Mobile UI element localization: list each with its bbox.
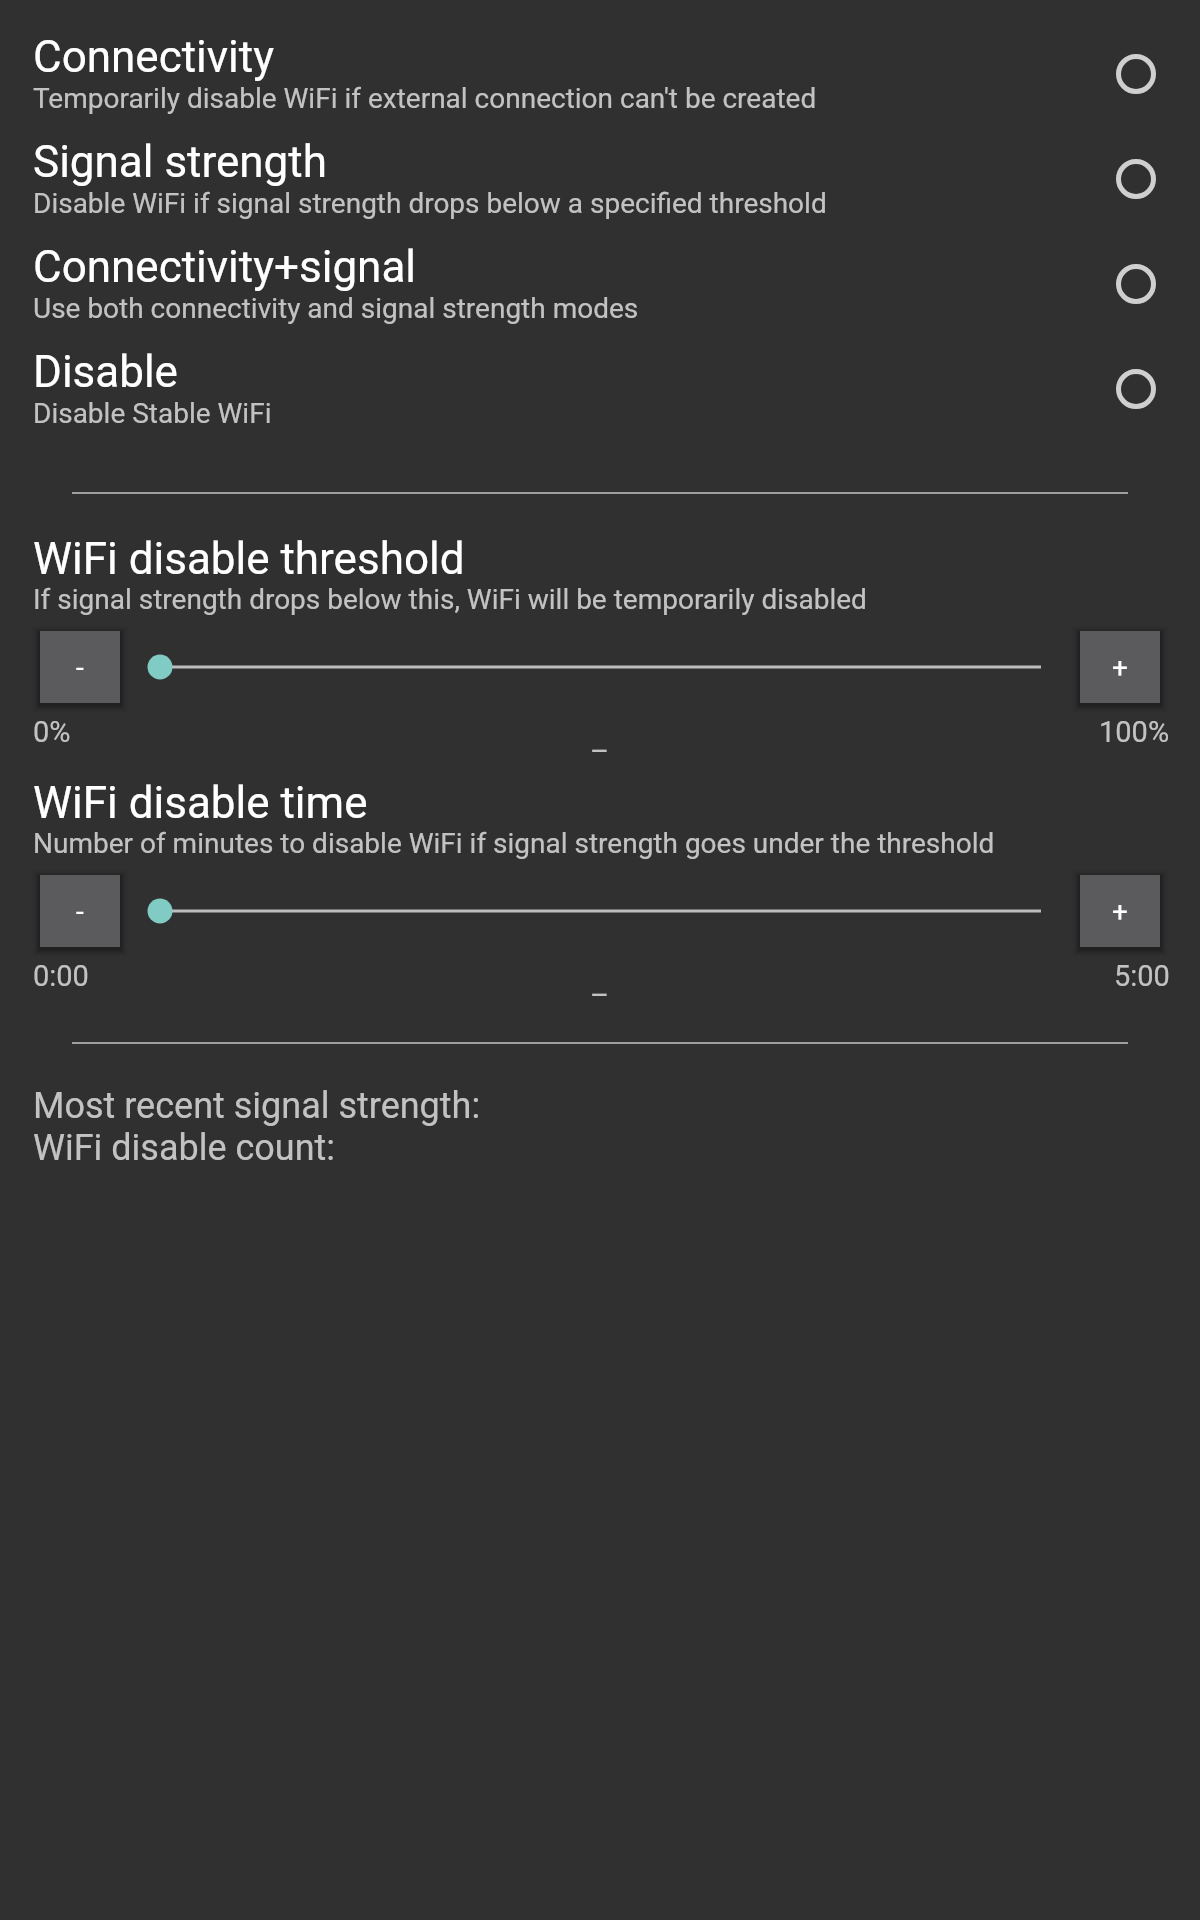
staticText: If signal strength drops below this, WiF… (33, 583, 867, 616)
staticText: WiFi disable time (33, 777, 368, 829)
button[interactable]: Signal strength (0, 105, 1200, 210)
button[interactable]: WiFi disable threshold slider (147, 652, 1041, 682)
staticText: Most recent signal strength: (33, 1085, 481, 1127)
staticText: WiFi disable threshold (33, 533, 465, 585)
button[interactable]: Increase WiFi disable threshold (1080, 631, 1160, 703)
button[interactable]: Decrease WiFi disable threshold (40, 631, 120, 703)
staticText: Number of minutes to disable WiFi if sig… (33, 827, 995, 860)
staticText: - (76, 895, 84, 928)
staticText: - (76, 651, 84, 684)
button[interactable]: Disable (0, 315, 1200, 420)
staticText: 0:00 (33, 959, 89, 993)
staticText: Connectivity+signal (33, 241, 417, 293)
button[interactable]: Connectivity (0, 0, 1200, 105)
staticText: – (590, 978, 610, 1012)
staticText: Disable WiFi if signal strength drops be… (33, 187, 827, 220)
button[interactable]: Connectivity+signal (0, 210, 1200, 315)
staticText: Signal strength (33, 136, 327, 188)
staticText: WiFi disable count: (33, 1127, 336, 1169)
button[interactable]: Increase WiFi disable time (1080, 875, 1160, 947)
staticText: 0% (33, 715, 71, 749)
staticText: + (1112, 895, 1128, 928)
staticText: 5:00 (1114, 959, 1170, 993)
staticText: + (1112, 651, 1128, 684)
button[interactable]: WiFi disable time slider (147, 896, 1041, 926)
staticText: Disable (33, 346, 178, 398)
staticText: – (590, 734, 610, 768)
staticText: Disable Stable WiFi (33, 397, 272, 430)
button[interactable]: Decrease WiFi disable time (40, 875, 120, 947)
staticText: 100% (1099, 715, 1170, 749)
staticText: Connectivity (33, 31, 275, 83)
staticText: Temporarily disable WiFi if external con… (33, 82, 817, 115)
staticText: Use both connectivity and signal strengt… (33, 292, 639, 325)
